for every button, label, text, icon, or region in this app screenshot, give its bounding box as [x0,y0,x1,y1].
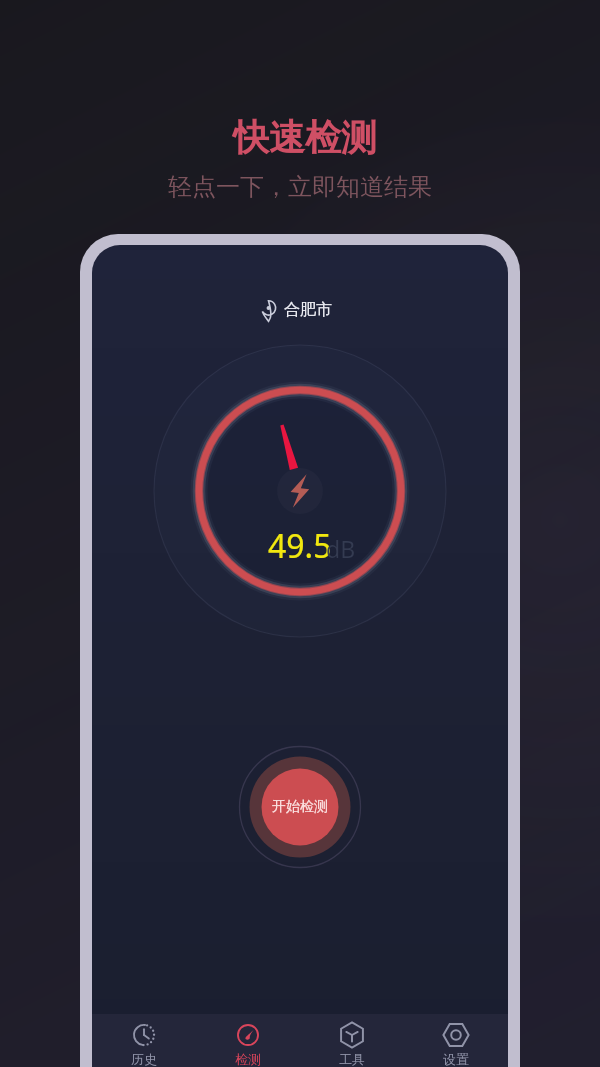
staticText: 轻点一下，立即知道结果 [168,172,432,202]
staticText: 设置 [443,1051,469,1067]
staticText: 合肥市 [284,300,332,320]
button[interactable]: 检测 [196,1014,300,1067]
staticText: 开始检测 [272,798,328,816]
staticText: 工具 [339,1051,365,1067]
button[interactable]: 合肥市 [254,297,338,323]
staticText: 49.5 [268,524,332,568]
button[interactable]: 开始检测 [238,745,362,869]
button[interactable]: 工具 [300,1014,404,1067]
staticText: 检测 [235,1051,261,1067]
button[interactable]: 设置 [404,1014,508,1067]
button[interactable]: 历史 [92,1014,196,1067]
staticText: 快速检测 [233,115,377,160]
staticText: 历史 [131,1051,157,1067]
staticText: dB [326,533,356,564]
